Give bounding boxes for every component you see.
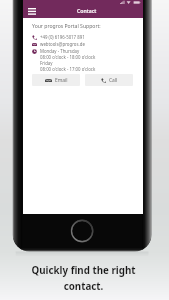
staticText: Quickly find the right contact. [0,264,168,293]
button[interactable]: Monday - Thursday 08:00 o'clock - 18:00 … [32,48,137,72]
button[interactable]: Email [32,74,80,86]
staticText: +49 (0) 6196-5017 891 [40,34,85,40]
staticText: Your progros Portal Support: [32,23,101,30]
button[interactable]: Open navigation menu [25,4,38,16]
button[interactable]: +49 (0) 6196-5017 891 [32,34,137,40]
staticText: webtools@progros.de [40,41,85,47]
button[interactable]: Call [85,74,133,86]
button[interactable]: webtools@progros.de [32,41,137,47]
staticText: Email [55,77,68,84]
staticText: Call [109,77,118,84]
staticText: Monday - Thursday 08:00 o'clock - 18:00 … [40,48,96,72]
staticText: Contact [77,7,97,14]
